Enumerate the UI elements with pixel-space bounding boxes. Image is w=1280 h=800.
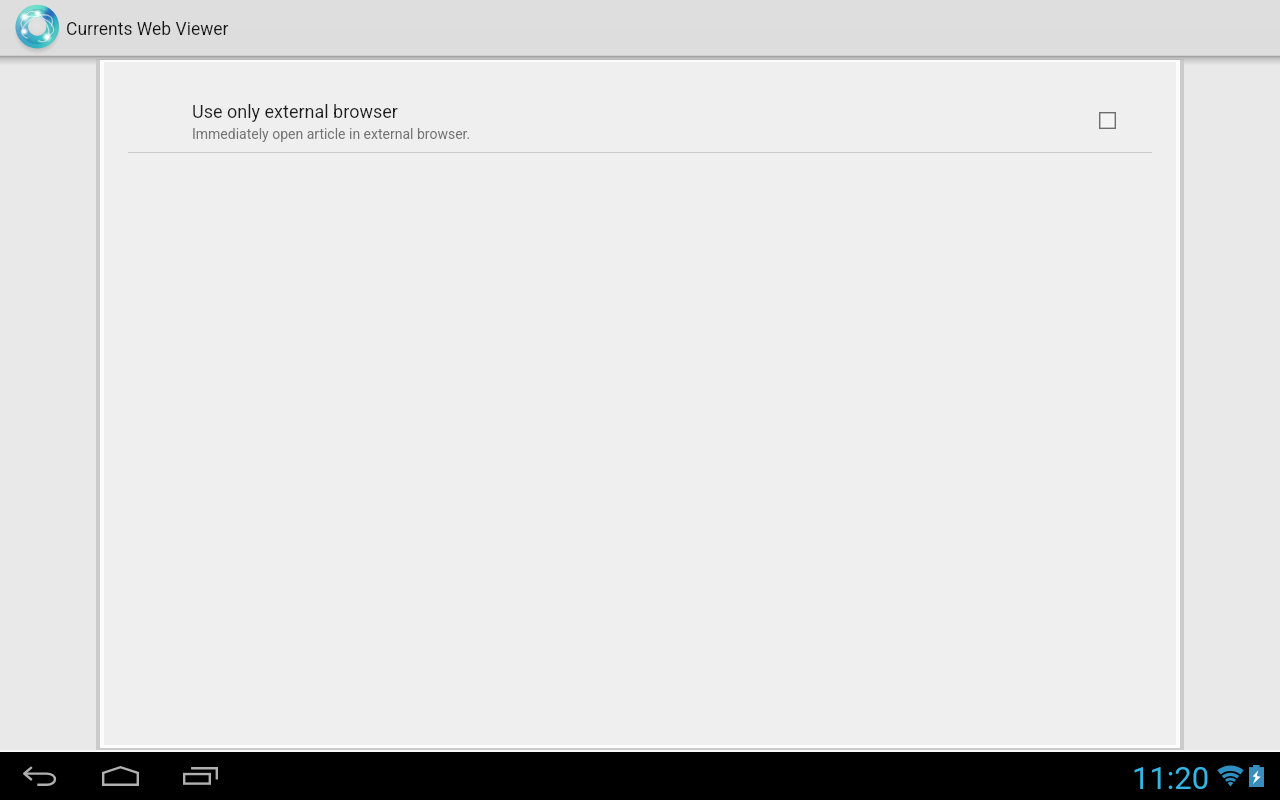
other: Wi-Fi signal	[1216, 752, 1244, 800]
button[interactable]: Recent apps	[160, 752, 240, 800]
staticText: Use only external browser	[192, 101, 398, 122]
staticText: Currents Web Viewer	[66, 19, 229, 40]
staticText: 11:20	[1132, 760, 1210, 796]
button[interactable]: Use only external browser	[104, 62, 1176, 153]
other: Battery charging	[1249, 752, 1264, 800]
button[interactable]: Home	[80, 752, 160, 800]
staticText: Immediately open article in external bro…	[192, 126, 471, 142]
button[interactable]: Back	[0, 752, 80, 800]
